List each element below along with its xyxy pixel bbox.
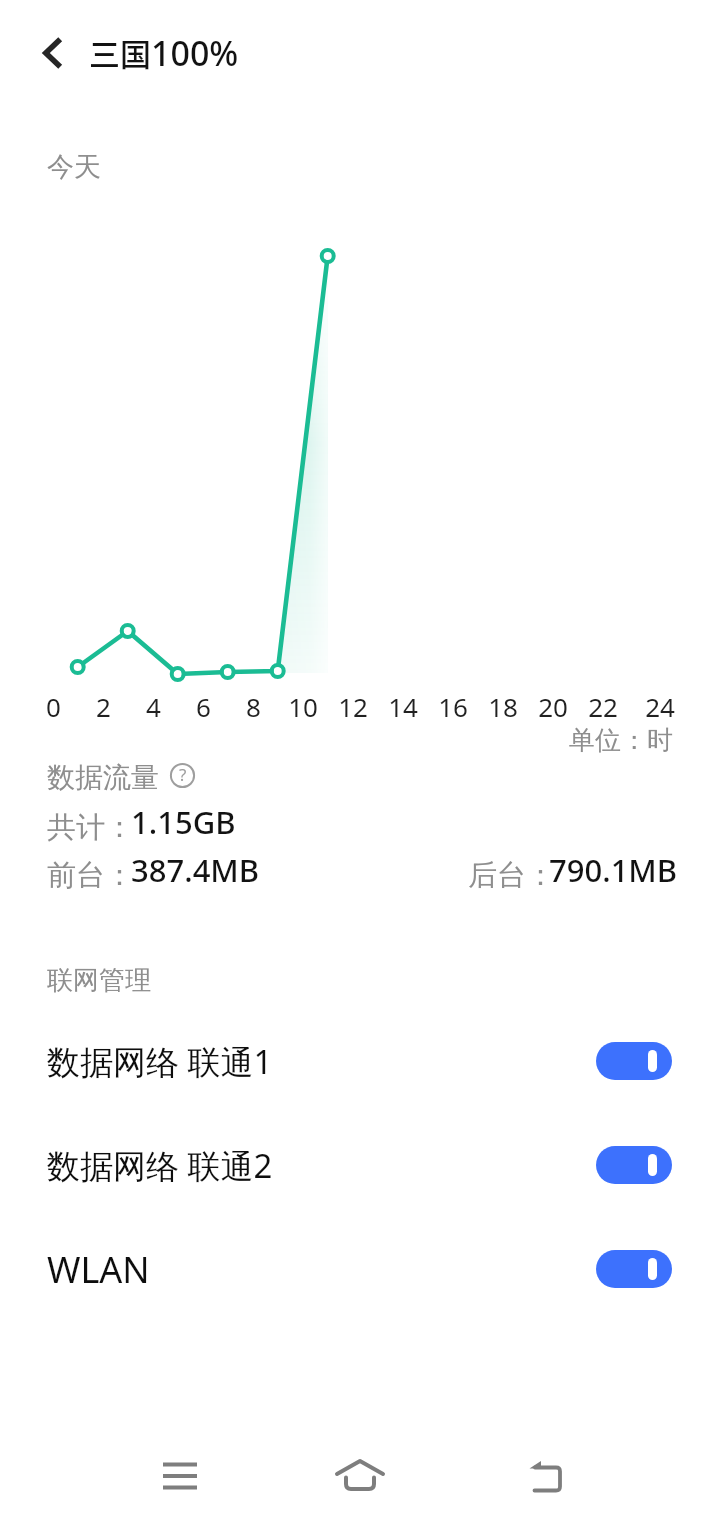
- staticText: 数据网络 联通2: [47, 1143, 273, 1188]
- staticText: 16: [438, 689, 468, 724]
- staticText: 790.1MB: [549, 849, 678, 891]
- staticText: 单位：时: [569, 724, 673, 757]
- staticText: 8: [246, 689, 261, 724]
- staticText: 数据流量: [47, 760, 159, 795]
- staticText: 10: [288, 689, 318, 724]
- button[interactable]: 数据网络 联通1: [0, 1009, 720, 1113]
- staticText: 1.15GB: [131, 801, 236, 843]
- button[interactable]: WLAN: [0, 1217, 720, 1321]
- button[interactable]: 数据网络 联通1 switch, on: [596, 1042, 672, 1080]
- staticText: 24: [645, 689, 675, 724]
- staticText: 12: [338, 689, 368, 724]
- staticText: 后台：: [468, 857, 555, 894]
- staticText: 22: [588, 689, 618, 724]
- staticText: 14: [388, 689, 418, 724]
- staticText: 共计：: [47, 809, 134, 846]
- button[interactable]: Back: [500, 1428, 596, 1518]
- staticText: 三国100%: [89, 30, 239, 76]
- staticText: 今天: [47, 150, 101, 184]
- staticText: 前台：: [47, 857, 134, 894]
- button[interactable]: 数据网络 联通2 switch, on: [596, 1146, 672, 1184]
- staticText: 20: [538, 689, 568, 724]
- staticText: 4: [146, 689, 161, 724]
- staticText: 0: [46, 689, 61, 724]
- button[interactable]: Back: [24, 24, 82, 82]
- staticText: WLAN: [47, 1245, 150, 1294]
- staticText: ?: [179, 763, 187, 786]
- button[interactable]: Home: [312, 1428, 408, 1518]
- staticText: 18: [488, 689, 518, 724]
- button[interactable]: 数据网络 联通2: [0, 1113, 720, 1217]
- button[interactable]: Help: [170, 763, 195, 788]
- staticText: 387.4MB: [131, 849, 260, 891]
- staticText: 数据网络 联通1: [47, 1039, 273, 1084]
- button[interactable]: Recent apps: [132, 1428, 228, 1518]
- button[interactable]: WLAN switch, on: [596, 1250, 672, 1288]
- staticText: 2: [96, 689, 111, 724]
- staticText: 6: [196, 689, 211, 724]
- staticText: 联网管理: [47, 964, 151, 997]
